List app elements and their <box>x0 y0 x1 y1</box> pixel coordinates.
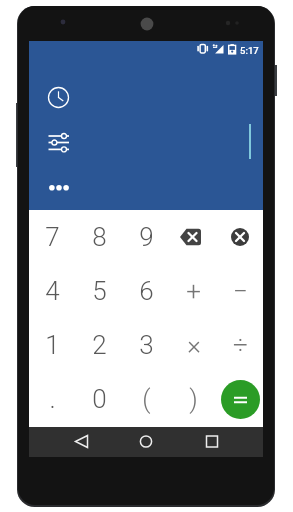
staticText: 4 <box>45 276 60 306</box>
staticText: 5 <box>92 276 107 306</box>
button[interactable]: Recents <box>197 427 227 457</box>
button[interactable]: Back <box>65 427 95 457</box>
staticText: ) <box>189 384 198 414</box>
button[interactable]: Settings <box>43 129 74 157</box>
staticText: 7 <box>45 222 60 252</box>
button[interactable]: ) <box>170 372 217 426</box>
staticText: ( <box>142 384 151 414</box>
button[interactable]: ÷ <box>217 318 263 372</box>
button[interactable]: . <box>29 372 76 426</box>
button[interactable]: More options <box>43 177 74 199</box>
staticText: 6 <box>139 276 154 306</box>
button[interactable]: − <box>217 264 263 318</box>
staticText: − <box>233 276 248 306</box>
staticText: 9 <box>139 222 154 252</box>
button[interactable]: 6 <box>123 264 170 318</box>
button[interactable]: 1 <box>29 318 76 372</box>
staticText: × <box>187 330 201 360</box>
button[interactable]: 3 <box>123 318 170 372</box>
staticText: . <box>49 384 56 414</box>
staticText: 3 <box>139 330 154 360</box>
staticText: 2 <box>92 330 107 360</box>
button[interactable]: Equals <box>217 372 263 426</box>
button[interactable]: 0 <box>76 372 123 426</box>
button[interactable]: 8 <box>76 210 123 264</box>
button[interactable]: Equals <box>221 380 260 419</box>
other: Clear <box>229 226 251 248</box>
button[interactable]: ( <box>123 372 170 426</box>
staticText: + <box>186 276 201 306</box>
staticText: 8 <box>92 222 107 252</box>
button[interactable]: × <box>170 318 217 372</box>
button[interactable]: 2 <box>76 318 123 372</box>
other: Backspace <box>182 227 206 247</box>
button[interactable]: 7 <box>29 210 76 264</box>
button[interactable]: 9 <box>123 210 170 264</box>
staticText: ÷ <box>233 330 248 360</box>
button[interactable]: + <box>170 264 217 318</box>
button[interactable]: Backspace <box>170 210 217 264</box>
button[interactable]: 4 <box>29 264 76 318</box>
staticText: 0 <box>92 384 107 414</box>
staticText: 1 <box>45 330 60 360</box>
button[interactable]: History <box>43 82 74 113</box>
button[interactable]: 5 <box>76 264 123 318</box>
button[interactable]: Home <box>131 427 161 457</box>
button[interactable]: Clear <box>217 210 263 264</box>
staticText: 5:17 <box>240 45 259 56</box>
